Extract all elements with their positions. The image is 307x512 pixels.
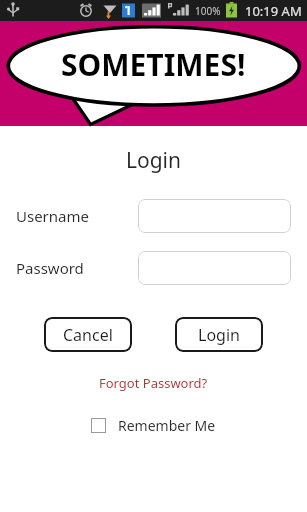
staticText: Forgot Password?: [99, 374, 208, 392]
button[interactable]: Login: [175, 317, 263, 352]
button[interactable]: Remember Me: [91, 416, 216, 435]
button[interactable]: Forgot Password?: [0, 374, 307, 392]
staticText: Login: [198, 324, 240, 346]
staticText: Login: [0, 146, 307, 175]
staticText: Password: [16, 258, 84, 278]
button[interactable]: [138, 199, 291, 233]
staticText: SOMETIMES!: [61, 44, 246, 85]
button[interactable]: Cancel: [44, 317, 132, 352]
staticText: 100%: [195, 4, 221, 18]
staticText: Cancel: [63, 324, 113, 346]
staticText: 10:19 AM: [245, 2, 302, 20]
button[interactable]: [138, 251, 291, 285]
staticText: Remember Me: [118, 416, 216, 435]
staticText: Username: [16, 206, 89, 226]
